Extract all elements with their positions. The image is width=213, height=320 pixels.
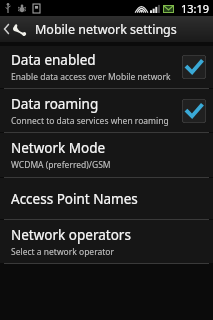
staticText: Enable data access over Mobile network [11, 71, 171, 83]
staticText: Data roaming [11, 95, 99, 113]
staticText: Select a network operator [11, 246, 114, 258]
staticText: Access Point Names [11, 190, 138, 208]
staticText: 13:19 [181, 1, 210, 16]
button[interactable]: Enabled checkbox [182, 55, 206, 79]
button[interactable]: Network operators [0, 220, 213, 263]
button[interactable]: Network Mode [0, 133, 213, 177]
staticText: WCDMA (preferred)/GSM [11, 159, 111, 171]
button[interactable]: Enabled checkbox [182, 99, 206, 123]
button[interactable]: Data enabled [0, 46, 213, 88]
staticText: Mobile network settings [35, 21, 177, 38]
staticText: Connect to data services when roaming [11, 115, 169, 127]
staticText: Network operators [11, 226, 131, 244]
button[interactable]: Access Point Names [0, 178, 213, 219]
button[interactable]: Back to previous screen [0, 16, 213, 42]
button[interactable]: Data roaming [0, 89, 213, 132]
staticText: Data enabled [11, 51, 96, 69]
staticText: Network Mode [11, 139, 106, 157]
